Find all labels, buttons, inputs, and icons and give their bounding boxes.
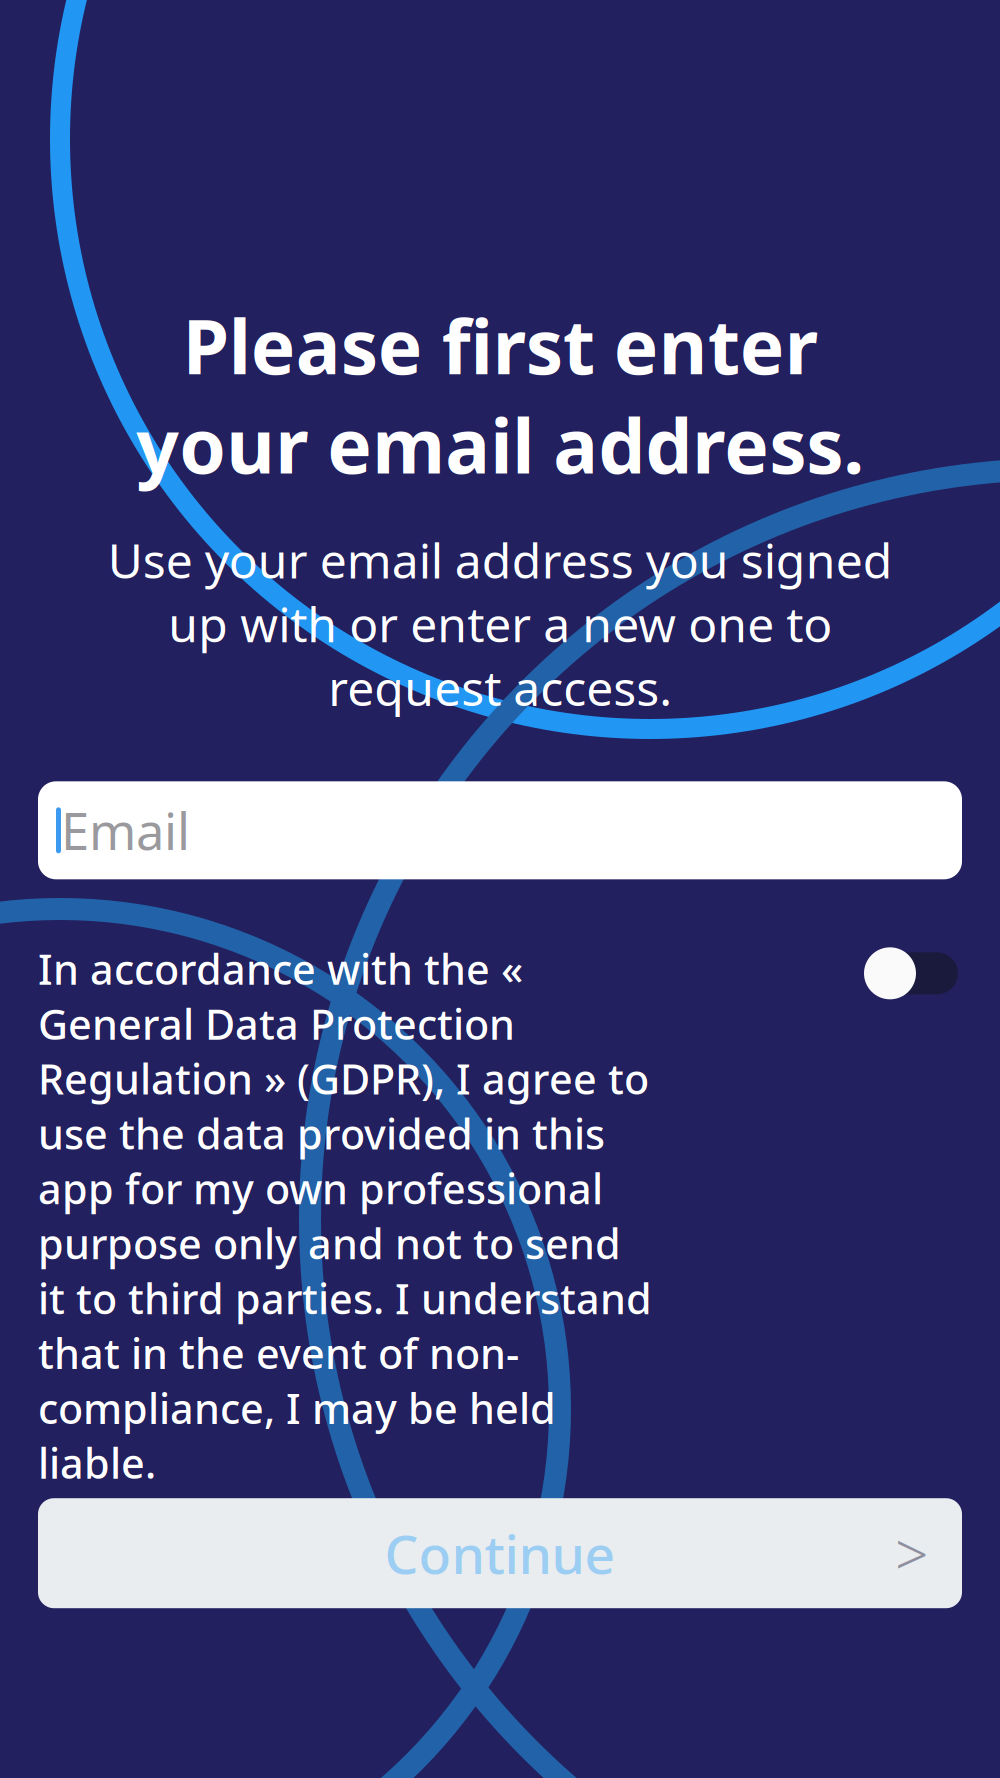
- button[interactable]: Email: [38, 781, 962, 879]
- button[interactable]: Agree to GDPR terms: [862, 941, 962, 1005]
- staticText: Use your email address you signed up wit…: [107, 528, 892, 719]
- staticText: Please first enter your email address.: [136, 296, 864, 494]
- staticText: In accordance with the « General Data Pr…: [38, 941, 652, 1490]
- staticText: Email: [61, 797, 190, 864]
- staticText: >: [895, 1514, 928, 1592]
- staticText: Continue: [384, 1518, 615, 1589]
- button[interactable]: Continue: [38, 1498, 962, 1608]
